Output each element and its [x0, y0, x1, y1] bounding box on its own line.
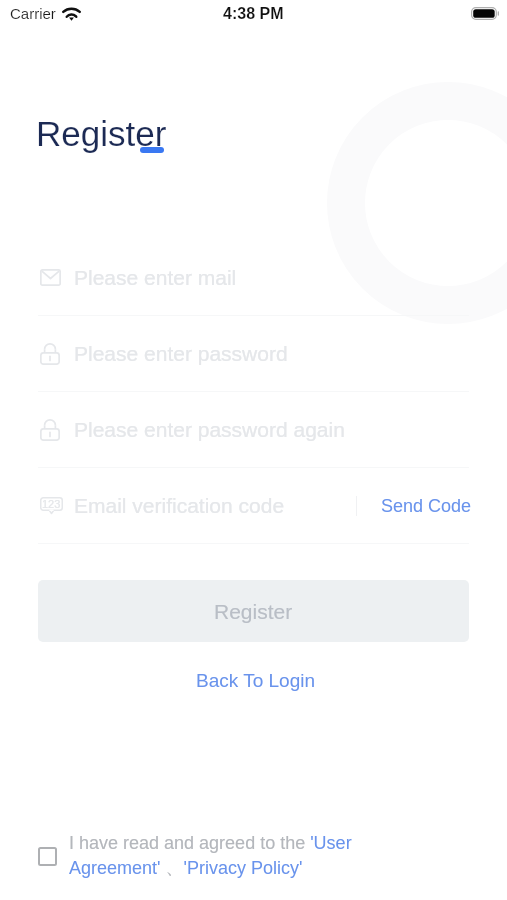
staticText: 123	[42, 498, 61, 510]
button[interactable]: Register	[38, 580, 469, 642]
staticText: Register	[214, 600, 293, 623]
staticText: Back To Login	[196, 670, 316, 691]
button[interactable]: Send Code	[354, 487, 472, 525]
staticText: I have read and agreed to the 'User Agre…	[69, 833, 359, 879]
staticText: 4:38 PM	[223, 5, 284, 23]
staticText: Send Code	[381, 496, 472, 516]
button[interactable]: Agree to terms checkbox	[38, 847, 57, 866]
staticText: Please enter mail	[74, 266, 237, 289]
staticText: Please enter password	[74, 342, 288, 365]
staticText: Please enter password again	[74, 418, 345, 441]
button[interactable]: Back To Login	[180, 663, 332, 698]
staticText: Email verification code	[74, 494, 285, 517]
staticText: Carrier	[10, 5, 56, 22]
staticText: Register	[36, 114, 167, 153]
